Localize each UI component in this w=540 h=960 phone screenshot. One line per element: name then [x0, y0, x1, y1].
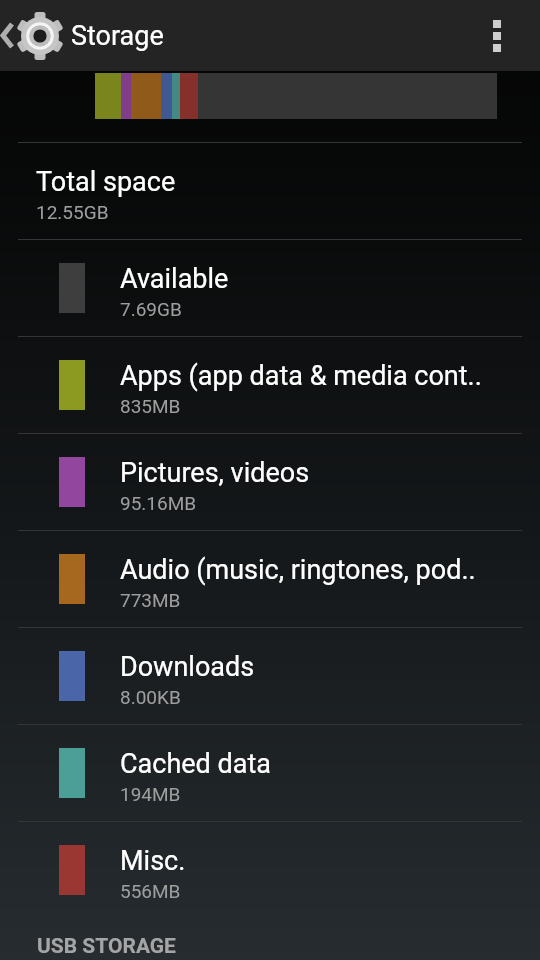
staticText: 194MB — [120, 783, 181, 805]
staticText: Total space — [36, 166, 176, 198]
button[interactable]: Available — [0, 240, 540, 336]
staticText: Audio (music, ringtones, pod.. — [120, 554, 476, 586]
staticText: USB STORAGE — [37, 934, 176, 959]
staticText: Pictures, videos — [120, 457, 310, 489]
staticText: Misc. — [120, 845, 186, 877]
button[interactable]: Cached data — [0, 725, 540, 821]
staticText: Available — [120, 263, 229, 295]
staticText: 7.69GB — [120, 298, 182, 320]
staticText: 12.55GB — [36, 201, 109, 223]
staticText: Downloads — [120, 651, 255, 683]
button[interactable]: Apps (app data & media cont.. — [0, 337, 540, 433]
button[interactable]: Misc. — [0, 822, 540, 918]
staticText: Apps (app data & media cont.. — [120, 360, 482, 392]
staticText: 8.00KB — [120, 686, 181, 708]
button[interactable] — [474, 0, 520, 71]
staticText: Cached data — [120, 748, 271, 780]
button[interactable]: Total space — [0, 143, 540, 239]
staticText: 556MB — [120, 880, 181, 902]
staticText: 95.16MB — [120, 492, 197, 514]
staticText: 773MB — [120, 589, 181, 611]
button[interactable]: Pictures, videos — [0, 434, 540, 530]
staticText: Storage — [71, 20, 164, 52]
button[interactable]: Storage — [0, 0, 540, 71]
button[interactable]: Audio (music, ringtones, pod.. — [0, 531, 540, 627]
button[interactable]: Downloads — [0, 628, 540, 724]
staticText: 835MB — [120, 395, 181, 417]
